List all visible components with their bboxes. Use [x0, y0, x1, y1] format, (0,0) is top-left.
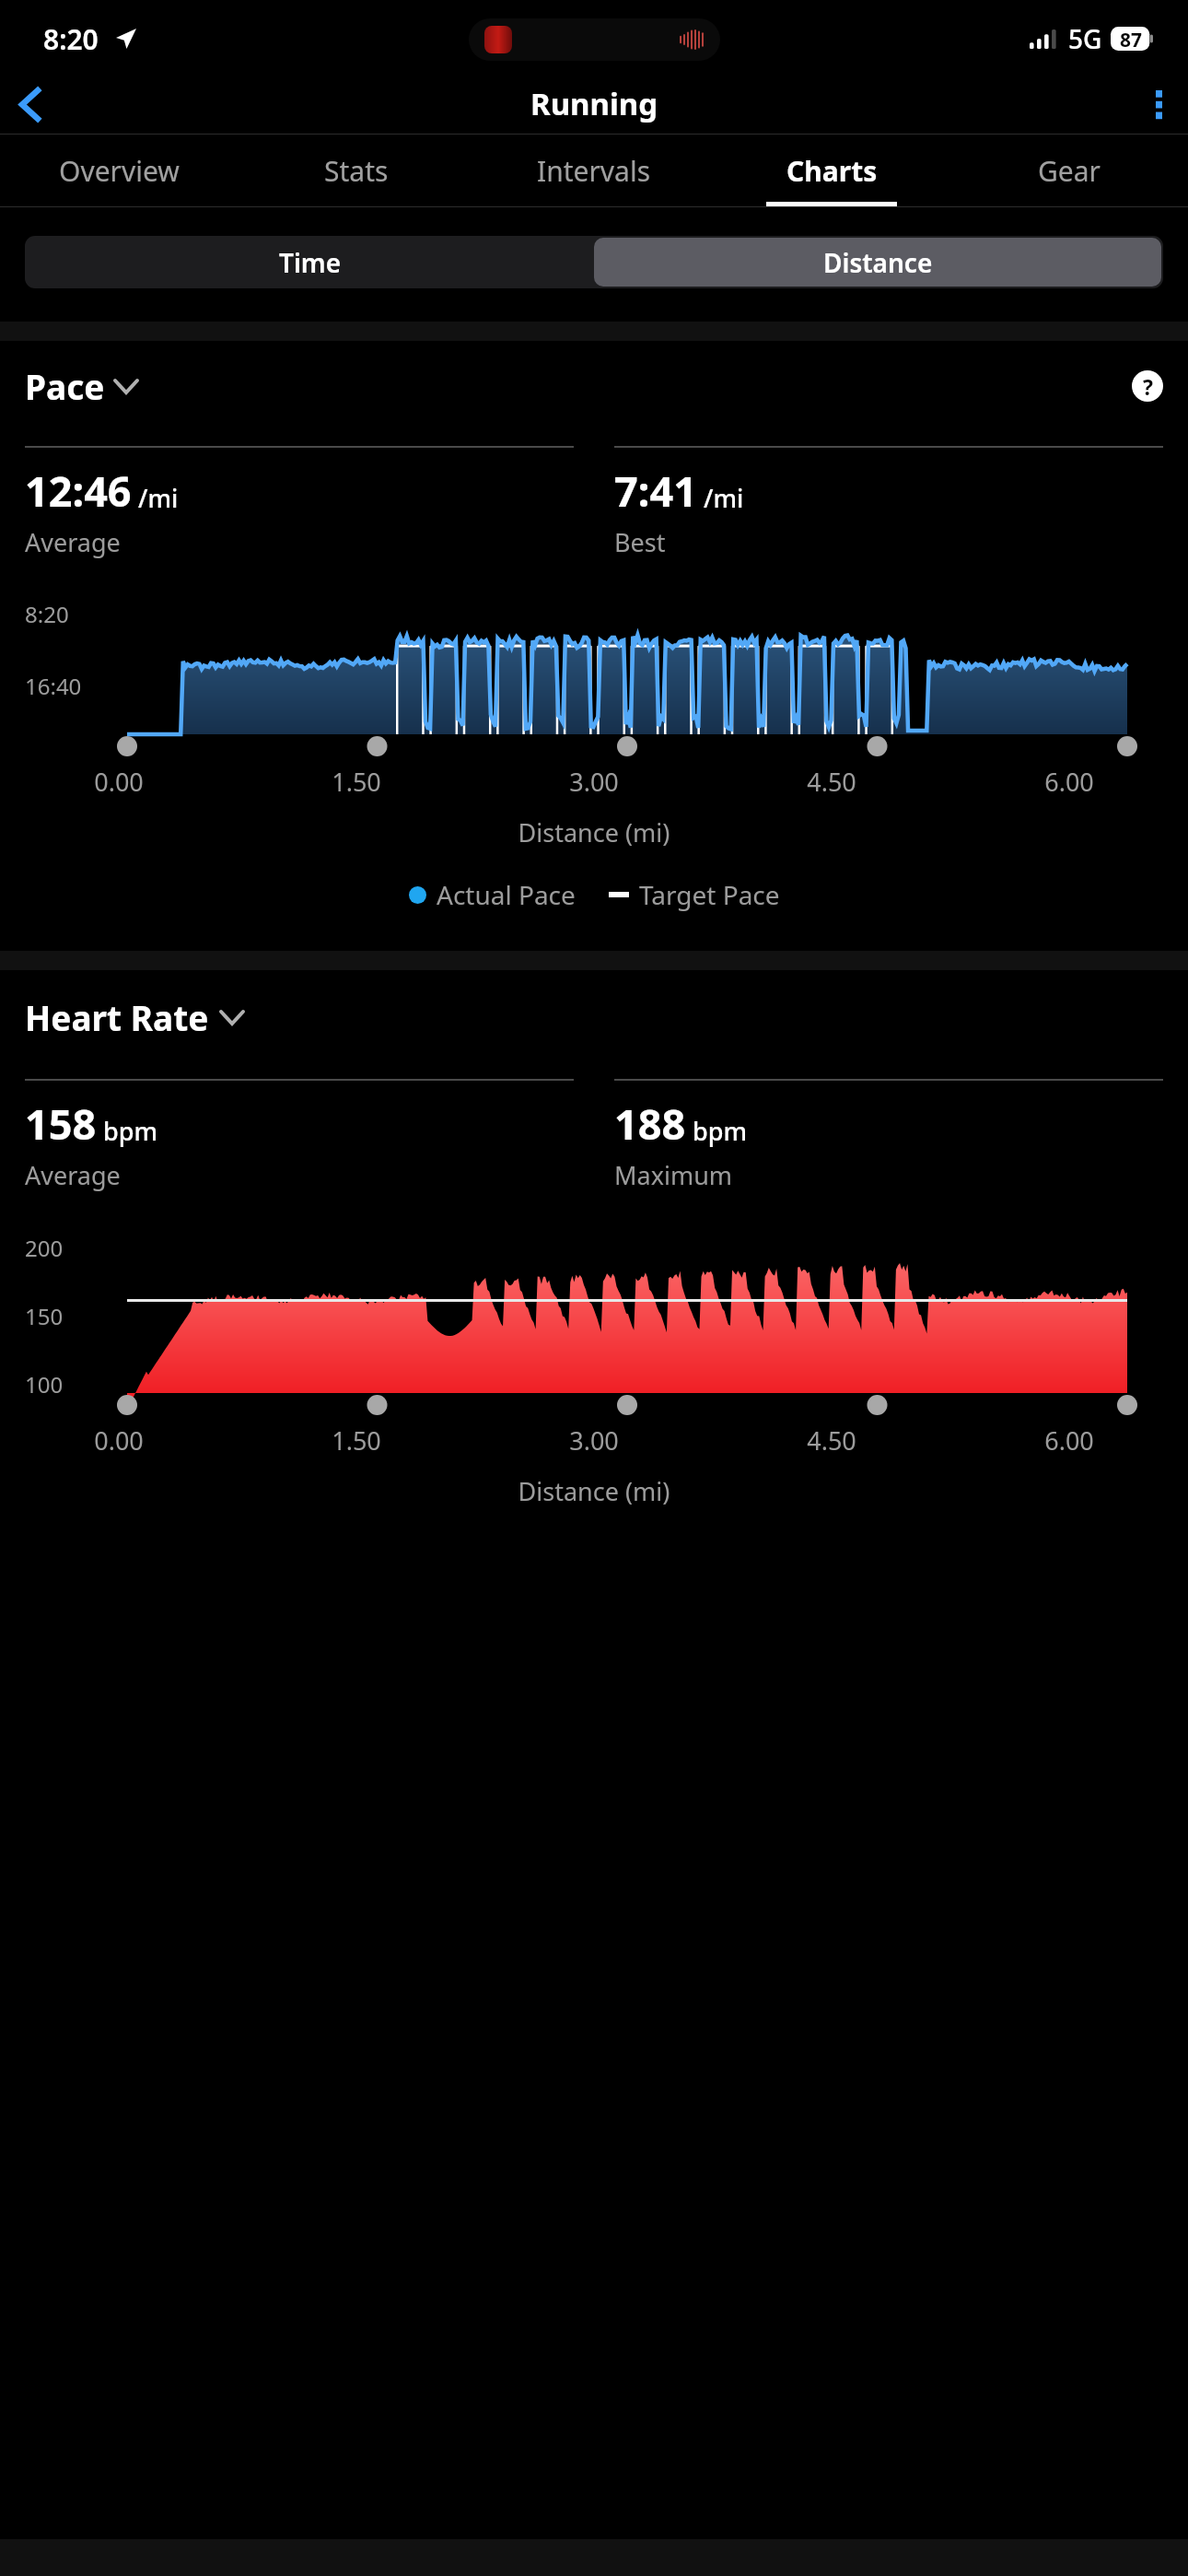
staticText: Time [279, 245, 342, 280]
staticText: Best [614, 525, 666, 559]
staticText: 188 [614, 1095, 686, 1152]
staticText: Heart Rate [25, 994, 209, 1040]
button[interactable]: Pace [25, 363, 137, 409]
staticText: Average [25, 1158, 121, 1192]
staticText: 3.00 [569, 765, 619, 799]
button[interactable]: Charts [713, 135, 950, 206]
staticText: 150 [25, 1301, 64, 1331]
staticText: ? [1143, 372, 1153, 401]
staticText: Overview [59, 152, 180, 190]
staticText: 0.00 [94, 765, 144, 799]
button[interactable]: Gear [950, 135, 1188, 206]
staticText: Pace [25, 363, 105, 409]
button[interactable]: Help [1132, 370, 1163, 402]
staticText: Charts [786, 152, 878, 190]
staticText: Average [25, 525, 121, 559]
staticText: 100 [25, 1369, 64, 1393]
staticText: Actual Pace [437, 877, 576, 912]
staticText: 6.00 [1044, 1423, 1094, 1458]
staticText: Maximum [614, 1158, 733, 1192]
staticText: bpm [103, 1114, 158, 1148]
staticText: Distance (mi) [0, 1474, 1188, 1508]
button[interactable]: Intervals [475, 135, 713, 206]
button[interactable]: Heart Rate [25, 994, 1163, 1040]
staticText: 12:46 [25, 463, 132, 519]
staticText: 158 [25, 1095, 97, 1152]
staticText: 8:20 [43, 20, 99, 58]
staticText: 4.50 [807, 1423, 856, 1458]
staticText: 4.50 [807, 765, 856, 799]
staticText: 200 [25, 1233, 64, 1263]
button[interactable]: Distance [594, 238, 1161, 287]
staticText: Running [530, 83, 658, 124]
staticText: Distance [823, 245, 933, 280]
button[interactable]: Back [0, 75, 59, 134]
staticText: 0.00 [94, 1423, 144, 1458]
staticText: 16:40 [25, 671, 82, 701]
staticText: Intervals [537, 152, 651, 190]
button[interactable]: More options [1129, 75, 1188, 134]
button[interactable]: Overview [0, 135, 238, 206]
staticText: 1.50 [332, 1423, 381, 1458]
staticText: 3.00 [569, 1423, 619, 1458]
staticText: Stats [324, 152, 389, 190]
button[interactable]: Stats [238, 135, 475, 206]
staticText: Target Pace [639, 877, 780, 912]
staticText: /mi [138, 481, 179, 515]
staticText: 87 [1120, 27, 1143, 51]
staticText: /mi [704, 481, 744, 515]
staticText: 7:41 [614, 463, 697, 519]
button[interactable]: Time [27, 238, 594, 287]
staticText: bpm [693, 1114, 748, 1148]
staticText: 6.00 [1044, 765, 1094, 799]
staticText: Distance (mi) [0, 815, 1188, 849]
staticText: Gear [1038, 152, 1101, 190]
staticText: 5G [1068, 21, 1102, 56]
staticText: 1.50 [332, 765, 381, 799]
staticText: 8:20 [25, 599, 69, 629]
